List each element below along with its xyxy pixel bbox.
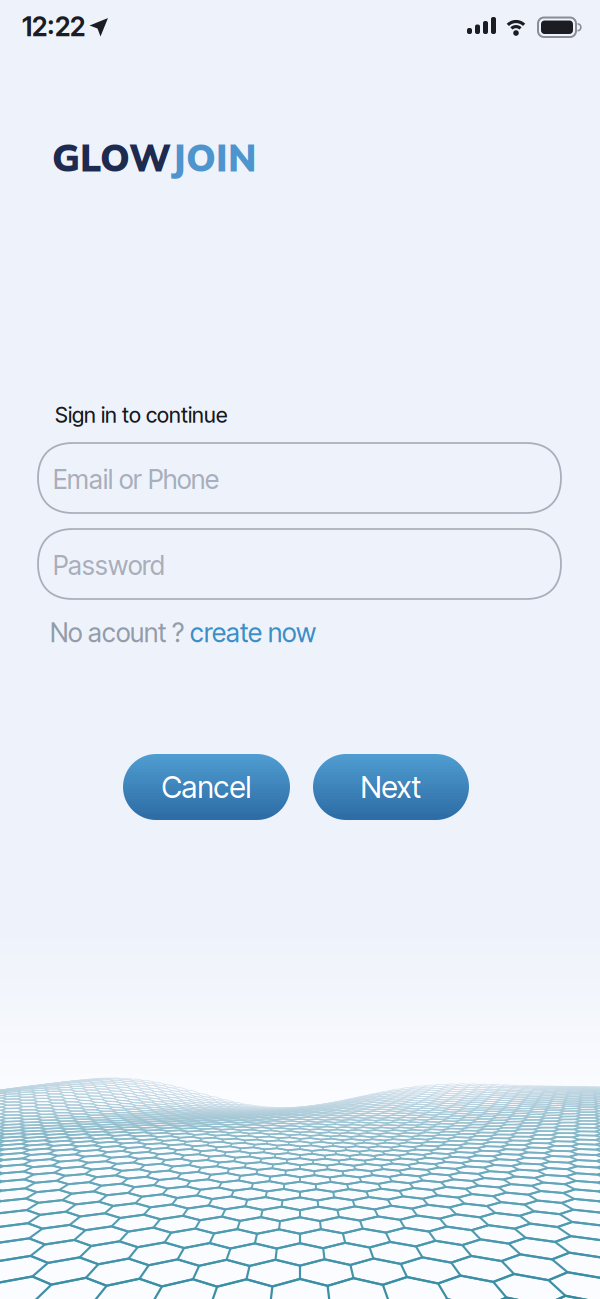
button[interactable]: Next	[313, 754, 469, 820]
staticText: No acount ?	[50, 617, 190, 649]
button[interactable]: No acount ?	[50, 617, 316, 649]
staticText: 12:22	[22, 11, 85, 42]
staticText: Password	[53, 550, 165, 581]
staticText: JOIN	[171, 134, 257, 181]
button[interactable]: Cancel	[123, 754, 290, 820]
staticText: Sign in to continue	[55, 402, 227, 428]
staticText: Next	[360, 769, 421, 805]
button[interactable]: Password	[38, 529, 561, 599]
staticText: GLOW	[52, 134, 171, 181]
staticText: Email or Phone	[53, 464, 219, 495]
staticText: Cancel	[161, 769, 251, 805]
staticText: create now	[190, 617, 316, 649]
button[interactable]: Email or Phone	[38, 443, 561, 513]
